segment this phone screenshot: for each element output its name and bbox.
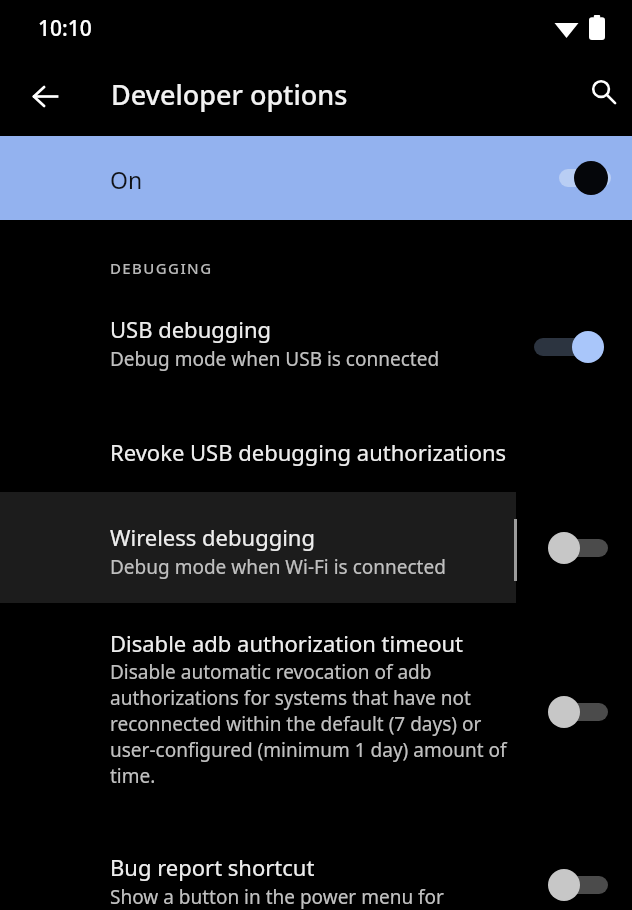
button[interactable]: USB debugging: [0, 300, 632, 392]
button[interactable]: On: [0, 136, 632, 220]
staticText: Wireless debugging: [110, 522, 315, 552]
staticText: Show a button in the power menu for: [110, 884, 444, 910]
button[interactable]: Bug report shortcut: [0, 840, 632, 910]
staticText: On: [110, 164, 143, 195]
button[interactable]: Back: [21, 72, 69, 120]
button[interactable]: Revoke USB debugging authorizations: [0, 415, 632, 487]
button[interactable]: Wireless debugging: [0, 492, 632, 603]
button[interactable]: Disable adb authorization timeout: [0, 615, 632, 815]
staticText: Bug report shortcut: [110, 852, 315, 882]
staticText: Debug mode when USB is connected: [110, 346, 440, 372]
staticText: DEBUGGING: [110, 258, 213, 278]
staticText: Developer options: [111, 76, 348, 113]
staticText: USB debugging: [110, 314, 272, 344]
staticText: Revoke USB debugging authorizations: [110, 437, 507, 467]
staticText: Debug mode when Wi-Fi is connected: [110, 554, 446, 580]
button[interactable]: Search: [579, 67, 627, 115]
staticText: 10:10: [38, 14, 92, 43]
staticText: Disable automatic revocation of adb auth…: [110, 659, 528, 789]
staticText: Disable adb authorization timeout: [110, 628, 463, 658]
